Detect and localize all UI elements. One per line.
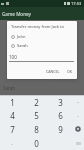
button[interactable]: Delete [72,122,84,136]
button[interactable]: 2 [24,96,48,109]
staticText: Transfer money from Jack to [11,24,64,29]
button[interactable]: 5 [24,109,48,122]
button[interactable]: 9 [48,122,72,136]
button[interactable]: Enter [72,136,84,150]
staticText: 0 [34,138,39,149]
button[interactable]: 6 [48,109,72,122]
staticText: . [77,112,79,119]
button[interactable]: 4 [0,109,24,122]
staticText: John [17,34,26,39]
staticText: Game Money [2,11,32,17]
staticText: 7 [10,124,15,135]
staticText: - [77,99,79,106]
button[interactable]: 0 [24,136,48,150]
staticText: 2 [34,97,39,108]
staticText: 5 [34,110,39,121]
staticText: 4 [10,110,15,121]
button[interactable]: 3 [48,96,72,109]
button[interactable]: John [7,33,77,40]
staticText: CANCEL [46,69,60,74]
staticText: Sarah [3,85,16,91]
staticText: 6 [58,110,63,121]
staticText: 8 [34,124,39,135]
button[interactable]: OK [65,68,74,75]
staticText: Sarah [17,43,28,48]
staticText: 3 [58,97,63,108]
staticText: . [11,140,13,147]
staticText: 100 [9,54,17,60]
staticText: 1 [10,97,15,108]
button[interactable]: 8 [24,122,48,136]
button[interactable]: 7 [0,122,24,136]
button[interactable]: - [72,96,84,109]
button[interactable]: CANCEL [44,68,62,75]
button[interactable]: Sarah [7,42,77,49]
staticText: 9 [58,124,63,135]
button[interactable]: 1 [0,96,24,109]
staticText: 17:53 [71,1,82,6]
button[interactable]: . [72,109,84,122]
staticText: OK [67,69,72,74]
